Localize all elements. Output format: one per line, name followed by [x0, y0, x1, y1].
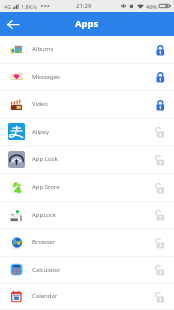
button[interactable]: Back [0, 13, 25, 36]
staticText: 40% [146, 3, 157, 10]
button[interactable]: Calendar [0, 284, 174, 310]
staticText: App Lock [32, 155, 58, 163]
staticText: AppLock [32, 211, 57, 219]
staticText: 1.8K/s [21, 3, 37, 10]
button[interactable]: App Lock [0, 146, 174, 174]
button[interactable]: Alipay [0, 119, 174, 146]
staticText: Messages [32, 73, 60, 81]
button[interactable]: Calculator [0, 257, 174, 284]
staticText: Apps [75, 17, 99, 30]
staticText: Browser [32, 238, 56, 246]
staticText: Calendar [32, 292, 58, 300]
button[interactable]: Albums [0, 36, 174, 64]
button[interactable]: Browser [0, 229, 174, 257]
staticText: App Store [32, 183, 60, 191]
button[interactable]: Messages [0, 64, 174, 91]
staticText: 4G [4, 3, 12, 10]
button[interactable]: AppLock [0, 202, 174, 229]
staticText: 21:29 [76, 2, 92, 10]
staticText: Video [32, 100, 48, 108]
button[interactable]: Video [0, 91, 174, 119]
button[interactable]: App Store [0, 174, 174, 202]
staticText: Albums [32, 45, 54, 53]
staticText: Alipay [32, 128, 50, 136]
staticText: Calculator [32, 266, 61, 274]
